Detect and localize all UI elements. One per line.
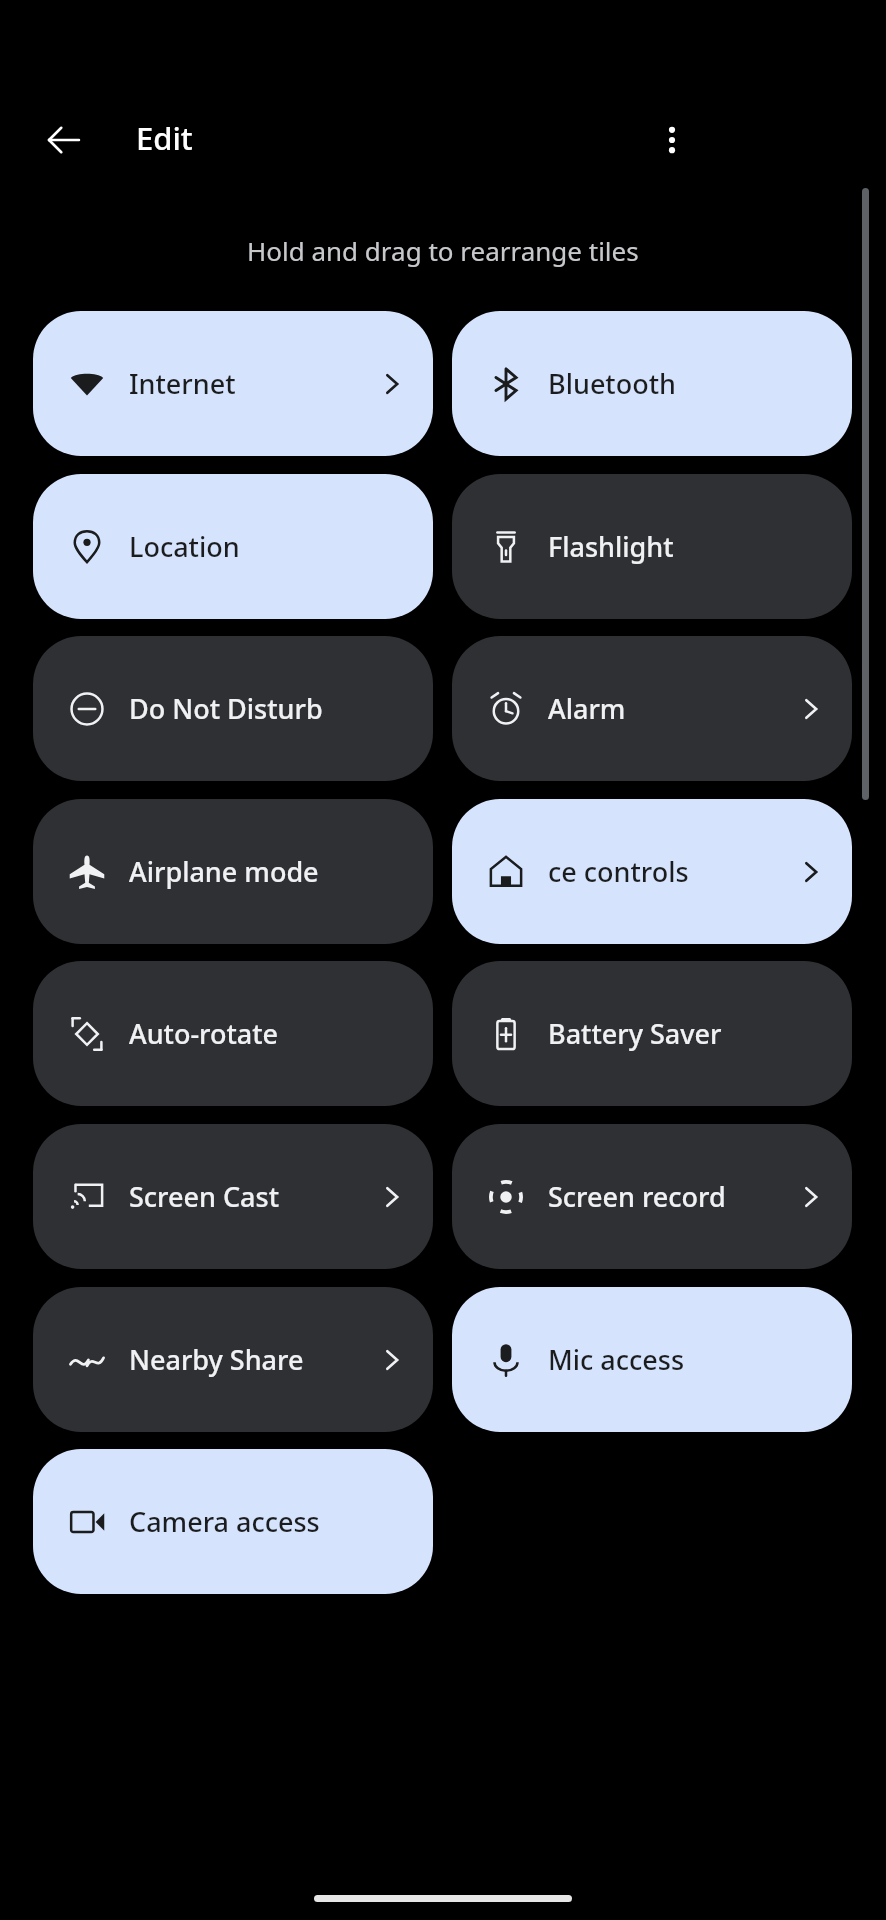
button[interactable]: Back <box>36 112 92 168</box>
staticText: Flashlight <box>548 528 824 565</box>
staticText: Location <box>129 528 405 565</box>
button[interactable]: More options <box>644 112 700 168</box>
button[interactable]: ce controls <box>452 799 852 944</box>
button[interactable]: Bluetooth <box>452 311 852 456</box>
staticText: Airplane mode <box>129 853 405 890</box>
button[interactable]: Mic access <box>452 1287 852 1432</box>
button[interactable]: Camera access <box>33 1449 433 1594</box>
staticText: Battery Saver <box>548 1015 824 1052</box>
staticText: Bluetooth <box>548 365 824 402</box>
button[interactable]: Auto-rotate <box>33 961 433 1106</box>
button[interactable]: Battery Saver <box>452 961 852 1106</box>
staticText: Mic access <box>548 1341 824 1378</box>
staticText: Edit <box>136 117 193 159</box>
button[interactable]: Alarm <box>452 636 852 781</box>
button[interactable]: Flashlight <box>452 474 852 619</box>
staticText: Screen Cast <box>129 1178 379 1215</box>
button[interactable]: Do Not Disturb <box>33 636 433 781</box>
button[interactable]: Screen Cast <box>33 1124 433 1269</box>
staticText: Do Not Disturb <box>129 690 405 727</box>
button[interactable]: Location <box>33 474 433 619</box>
staticText: Nearby Share <box>129 1341 379 1378</box>
staticText: Screen record <box>548 1178 798 1215</box>
button[interactable]: Internet <box>33 311 433 456</box>
staticText: Internet <box>129 365 379 402</box>
staticText: ce controls <box>548 853 798 890</box>
button[interactable]: Nearby Share <box>33 1287 433 1432</box>
button[interactable]: Airplane mode <box>33 799 433 944</box>
button[interactable]: Screen record <box>452 1124 852 1269</box>
staticText: Alarm <box>548 690 798 727</box>
staticText: Auto-rotate <box>129 1015 405 1052</box>
staticText: Hold and drag to rearrange tiles <box>247 233 639 268</box>
staticText: Camera access <box>129 1503 405 1540</box>
